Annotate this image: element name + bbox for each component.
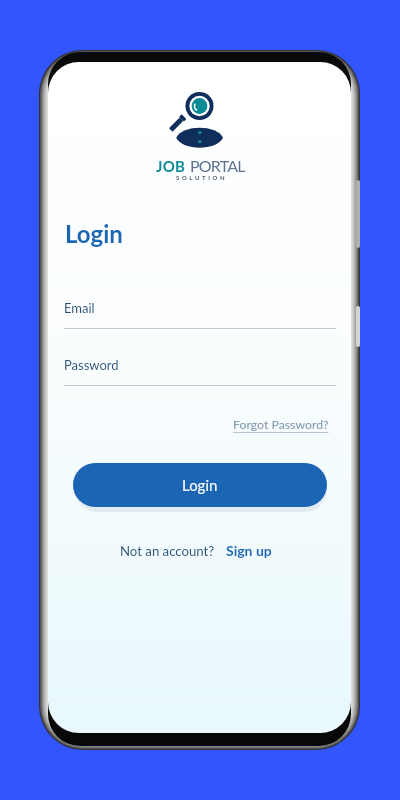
button[interactable]: Forgot Password? [233, 417, 329, 432]
button[interactable]: Email [64, 294, 336, 334]
staticText: Login [65, 219, 123, 248]
staticText: PORTAL [190, 156, 245, 175]
button[interactable]: Password [64, 351, 336, 391]
staticText: Email [64, 300, 95, 316]
staticText: Sign up [226, 542, 272, 559]
button[interactable]: Sign up [226, 542, 272, 559]
button[interactable]: Login [73, 463, 327, 507]
staticText: JOB [156, 157, 186, 175]
staticText: Login [182, 476, 218, 494]
staticText: Forgot Password? [233, 417, 329, 432]
staticText: Password [64, 357, 119, 373]
staticText: SOLUTION [176, 174, 228, 181]
staticText: Not an account? [120, 543, 215, 559]
